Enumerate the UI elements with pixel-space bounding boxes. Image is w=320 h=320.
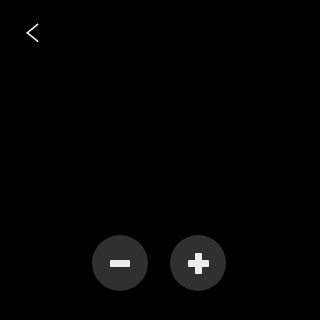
button[interactable]: Back bbox=[14, 14, 50, 50]
button[interactable]: Decrease bbox=[92, 235, 148, 291]
button[interactable]: Increase bbox=[170, 235, 226, 291]
